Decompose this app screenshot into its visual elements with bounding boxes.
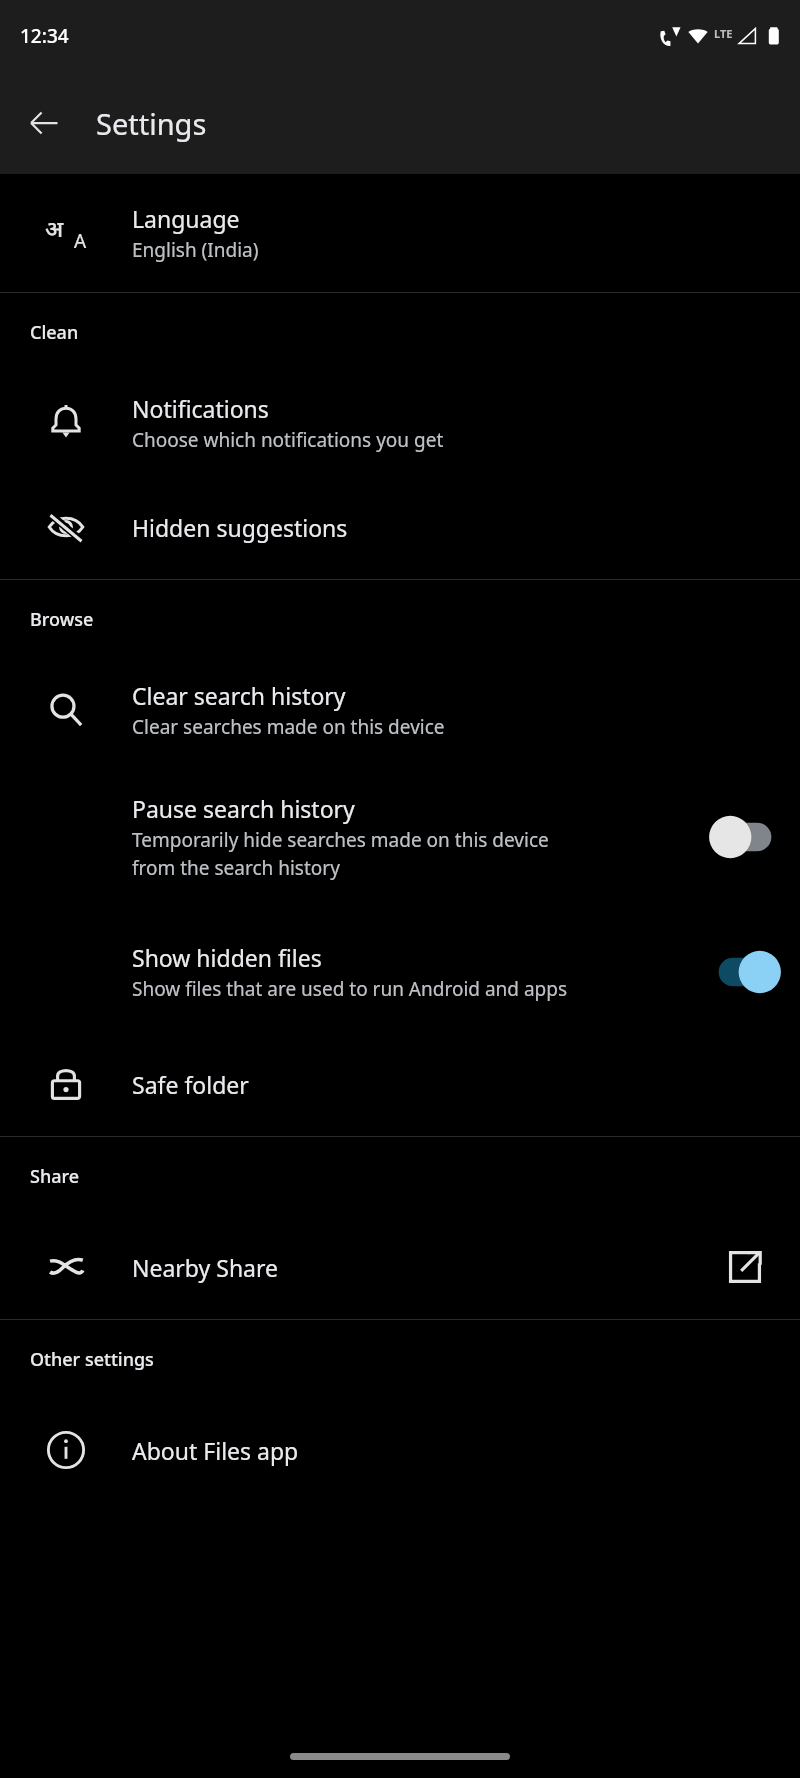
staticText: 12:34 <box>20 23 69 49</box>
button[interactable]: About Files app <box>0 1398 800 1502</box>
staticText: Clear search history <box>132 680 346 711</box>
staticText: Other settings <box>30 1347 154 1372</box>
button[interactable]: Nearby Share <box>0 1215 800 1319</box>
button[interactable]: Back <box>14 93 74 153</box>
staticText: Pause search history <box>132 793 355 824</box>
staticText: English (India) <box>132 237 259 263</box>
staticText: Temporarily hide searches made on this d… <box>132 827 549 881</box>
staticText: Notifications <box>132 393 269 424</box>
staticText: Settings <box>96 104 207 143</box>
staticText: Share <box>30 1164 80 1189</box>
staticText: About Files app <box>132 1435 299 1466</box>
button[interactable]: Show hidden files <box>0 912 800 1032</box>
staticText: Language <box>132 203 240 234</box>
staticText: Choose which notifications you get <box>132 427 444 453</box>
button[interactable]: अ <box>0 174 800 292</box>
staticText: Nearby Share <box>132 1252 279 1283</box>
staticText: Hidden suggestions <box>132 512 348 543</box>
button[interactable]: Pause search history <box>0 762 800 912</box>
staticText: Browse <box>30 607 94 632</box>
staticText: LTE <box>714 26 733 41</box>
staticText: अ <box>45 212 64 243</box>
staticText: Safe folder <box>132 1069 249 1100</box>
staticText: A <box>74 228 87 254</box>
button[interactable]: Show hidden files <box>690 932 800 1012</box>
button[interactable]: Safe folder <box>0 1032 800 1136</box>
button[interactable]: Hidden suggestions <box>0 475 800 579</box>
staticText: Show hidden files <box>132 942 322 973</box>
staticText: Show files that are used to run Android … <box>132 976 568 1002</box>
staticText: Clear searches made on this device <box>132 714 445 740</box>
button[interactable]: Clear search history <box>0 658 800 762</box>
staticText: Clean <box>30 320 79 345</box>
button[interactable]: Pause search history <box>690 797 800 877</box>
button[interactable]: Notifications <box>0 371 800 475</box>
